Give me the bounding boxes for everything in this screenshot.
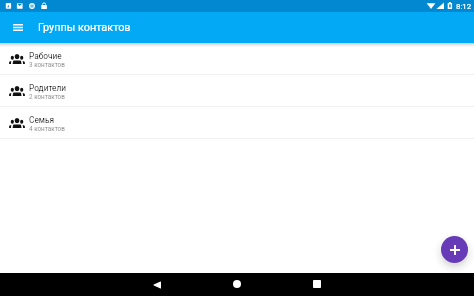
button[interactable]: Родители bbox=[0, 75, 474, 107]
staticText: 8:12 bbox=[456, 2, 472, 11]
staticText: Родители bbox=[29, 83, 67, 93]
button[interactable]: Семья bbox=[0, 107, 474, 139]
button[interactable]: Home bbox=[225, 272, 249, 295]
button[interactable]: Рабочие bbox=[0, 43, 474, 75]
button[interactable]: Back bbox=[145, 273, 169, 296]
button[interactable]: Recents bbox=[305, 272, 329, 295]
button[interactable]: Open navigation drawer bbox=[7, 16, 29, 38]
staticText: 2 контактов bbox=[29, 93, 65, 100]
button[interactable]: Add group bbox=[441, 236, 468, 263]
staticText: 4 контактов bbox=[29, 125, 65, 132]
staticText: Группы контактов bbox=[38, 21, 131, 34]
staticText: Рабочие bbox=[29, 51, 62, 61]
staticText: 3 контактов bbox=[29, 61, 65, 68]
staticText: Семья bbox=[29, 115, 55, 125]
